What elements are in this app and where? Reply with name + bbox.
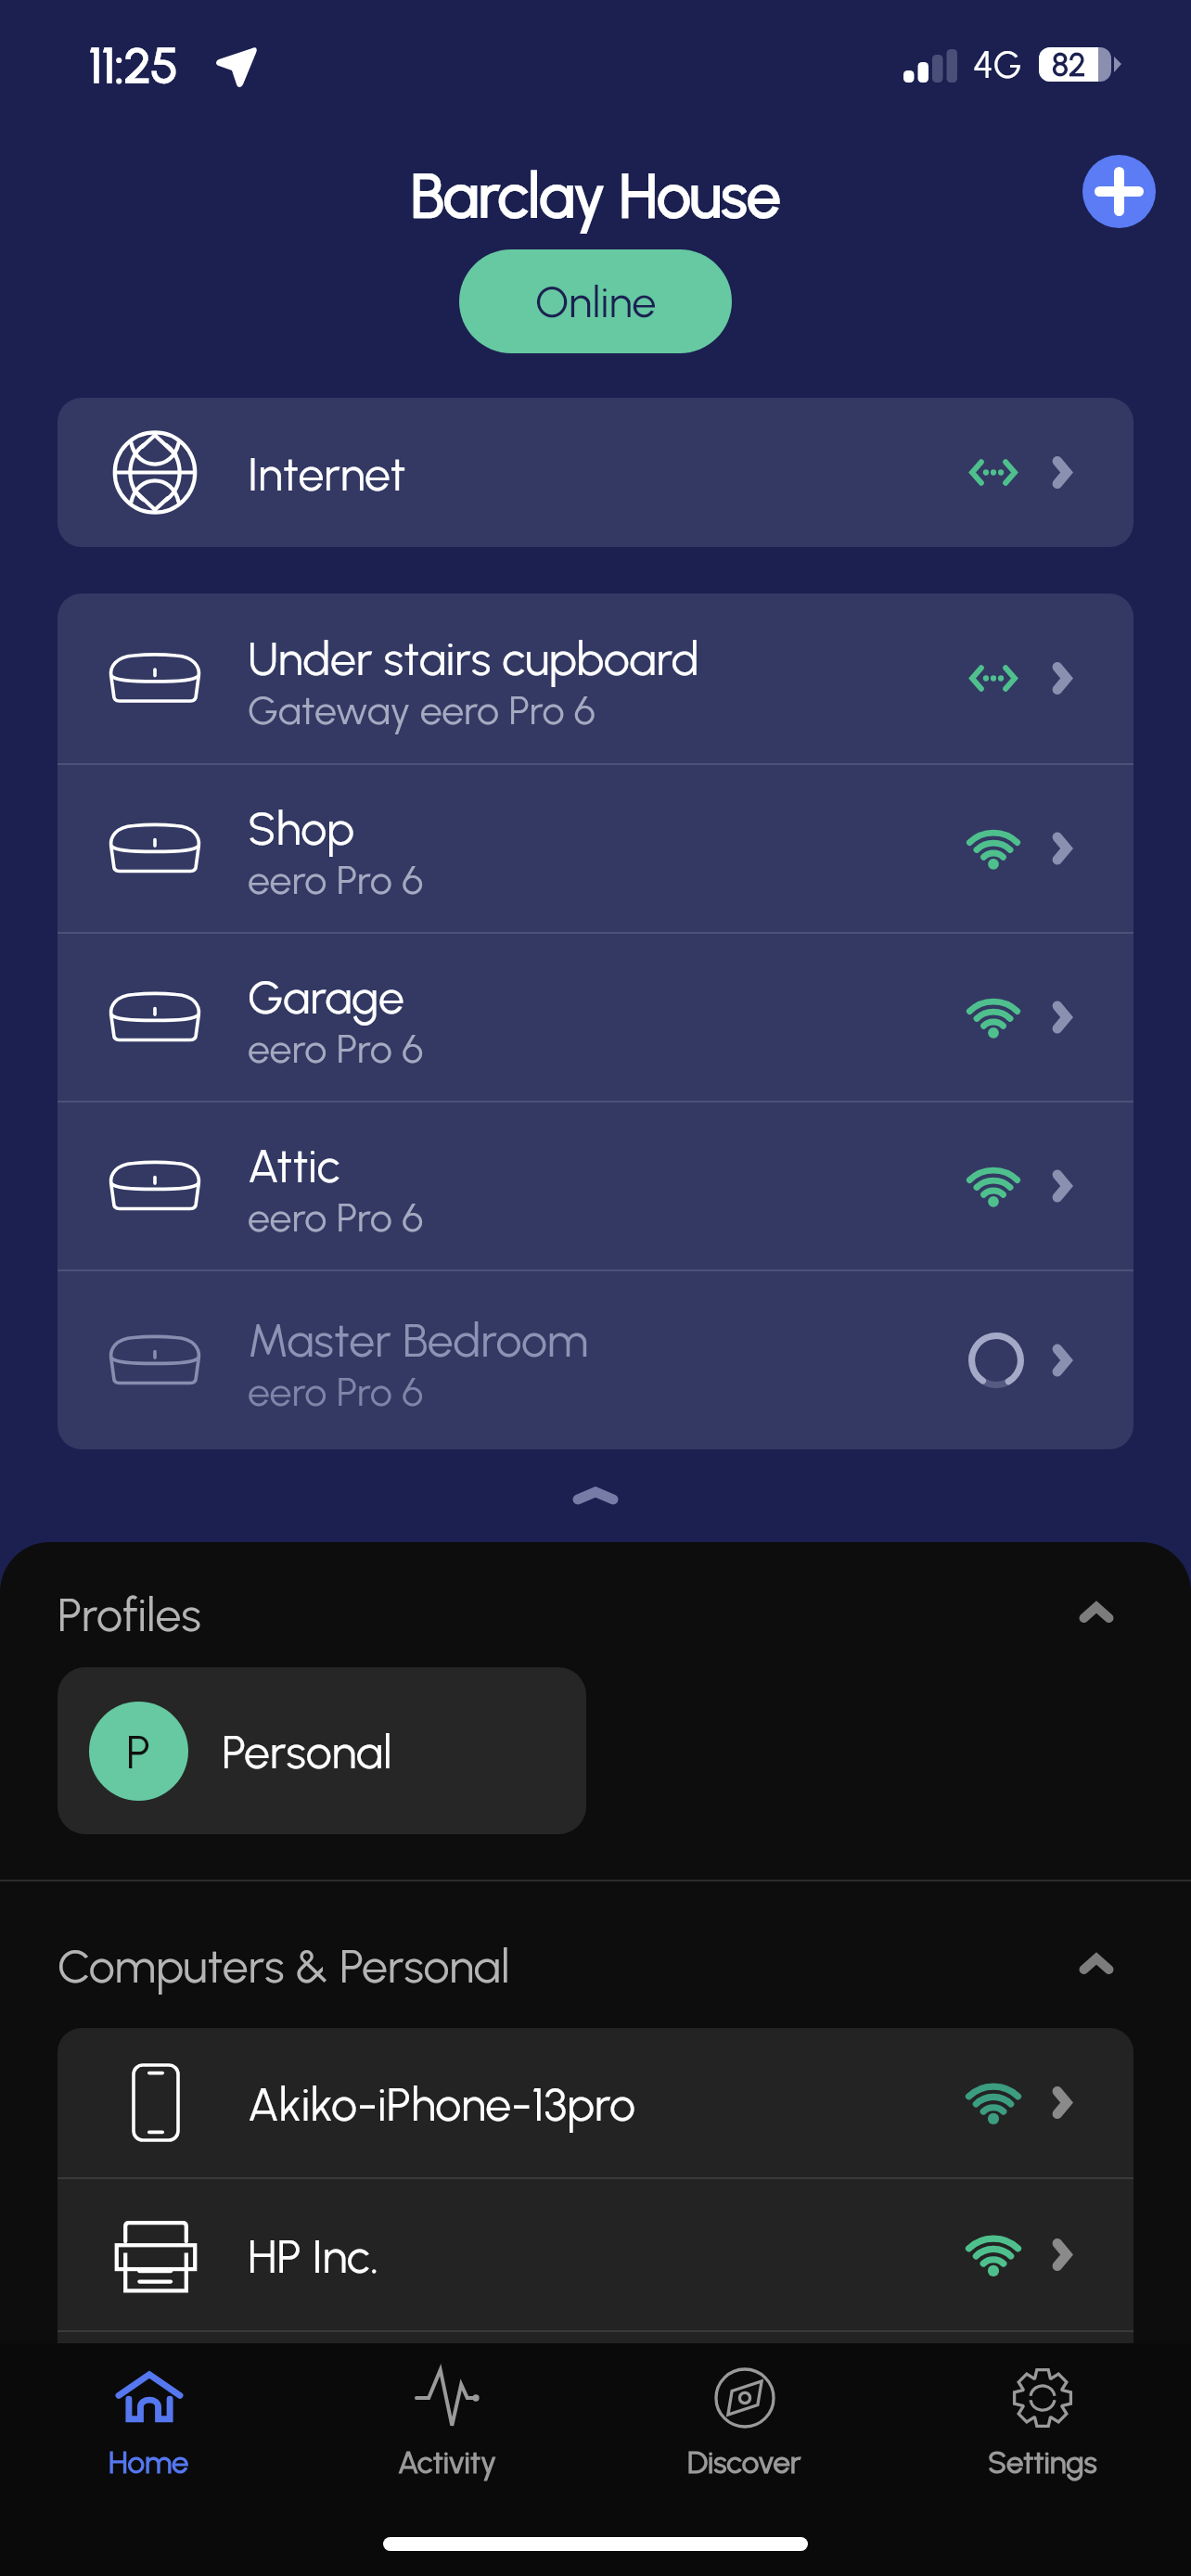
staticText: Personal [222,1724,392,1779]
button[interactable]: Shop [58,765,1133,932]
staticText: Profiles [58,1587,201,1642]
staticText: Akiko-iPhone-13pro [248,2076,636,2132]
staticText: 11:25 [89,36,178,96]
button[interactable]: Garage [58,934,1133,1101]
staticText: Gateway eero Pro 6 [248,686,595,734]
staticText: Master Bedroom [248,1312,589,1368]
staticText: eero Pro 6 [248,1368,424,1416]
button[interactable]: Activity [298,2343,595,2515]
button[interactable]: Under stairs cupboard [58,593,1133,763]
staticText: Settings [988,2444,1097,2481]
staticText: Discover [687,2444,801,2481]
staticText: HP Inc. [248,2228,379,2284]
staticText: eero Pro 6 [248,1193,424,1242]
staticText: P [126,1724,151,1779]
staticText: Home [109,2444,189,2481]
button[interactable]: Collapse network list [535,1463,656,1528]
staticText: Garage [248,969,404,1025]
staticText: Activity [398,2444,496,2481]
staticText: eero Pro 6 [248,856,424,904]
staticText: Online [535,275,657,327]
button[interactable]: P [58,1667,586,1834]
button[interactable]: Home [0,2343,298,2515]
staticText: Computers & Personal [58,1938,510,1994]
staticText: 4G [973,43,1022,87]
button[interactable]: HP Inc. [58,2179,1133,2330]
staticText: Under stairs cupboard [248,631,699,686]
button[interactable]: Settings [893,2343,1191,2515]
staticText: Attic [248,1138,341,1193]
staticText: Shop [248,800,354,856]
staticText: Internet [248,446,406,502]
button[interactable]: Collapse profiles [1044,1575,1148,1650]
button[interactable]: Discover [595,2343,893,2515]
staticText: eero Pro 6 [248,1025,424,1073]
button[interactable]: Master Bedroom [58,1271,1133,1449]
button[interactable]: Internet [58,398,1133,547]
staticText: 82 [1052,46,1086,84]
button[interactable]: Attic [58,1103,1133,1269]
staticText: Barclay House [411,159,781,232]
button[interactable]: Online [459,249,732,353]
button[interactable]: Collapse computers [1044,1927,1148,2001]
button[interactable]: Akiko-iPhone-13pro [58,2028,1133,2177]
button[interactable]: Add eero device [1082,155,1156,228]
